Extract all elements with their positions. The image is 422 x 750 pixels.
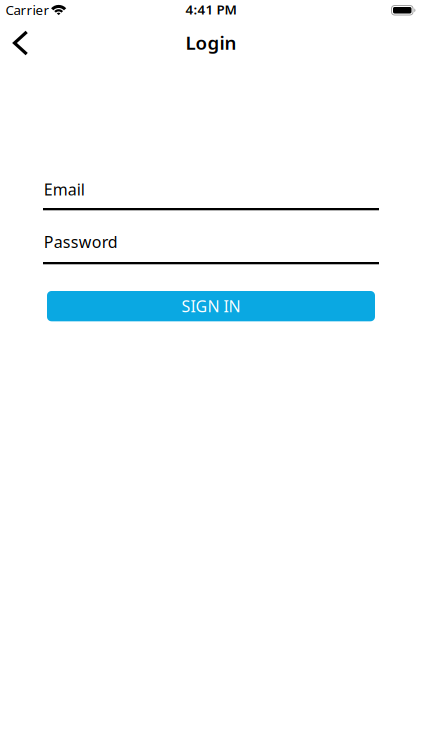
staticText: Email: [44, 179, 85, 200]
staticText: Carrier: [5, 1, 49, 19]
button[interactable]: Email: [43, 170, 379, 210]
button[interactable]: Password: [43, 224, 379, 264]
button[interactable]: SIGN IN: [47, 291, 375, 321]
button[interactable]: Back: [0, 0, 43, 63]
staticText: SIGN IN: [181, 295, 240, 317]
staticText: Login: [185, 30, 236, 55]
staticText: 4:41 PM: [185, 0, 236, 18]
staticText: Password: [44, 231, 118, 252]
